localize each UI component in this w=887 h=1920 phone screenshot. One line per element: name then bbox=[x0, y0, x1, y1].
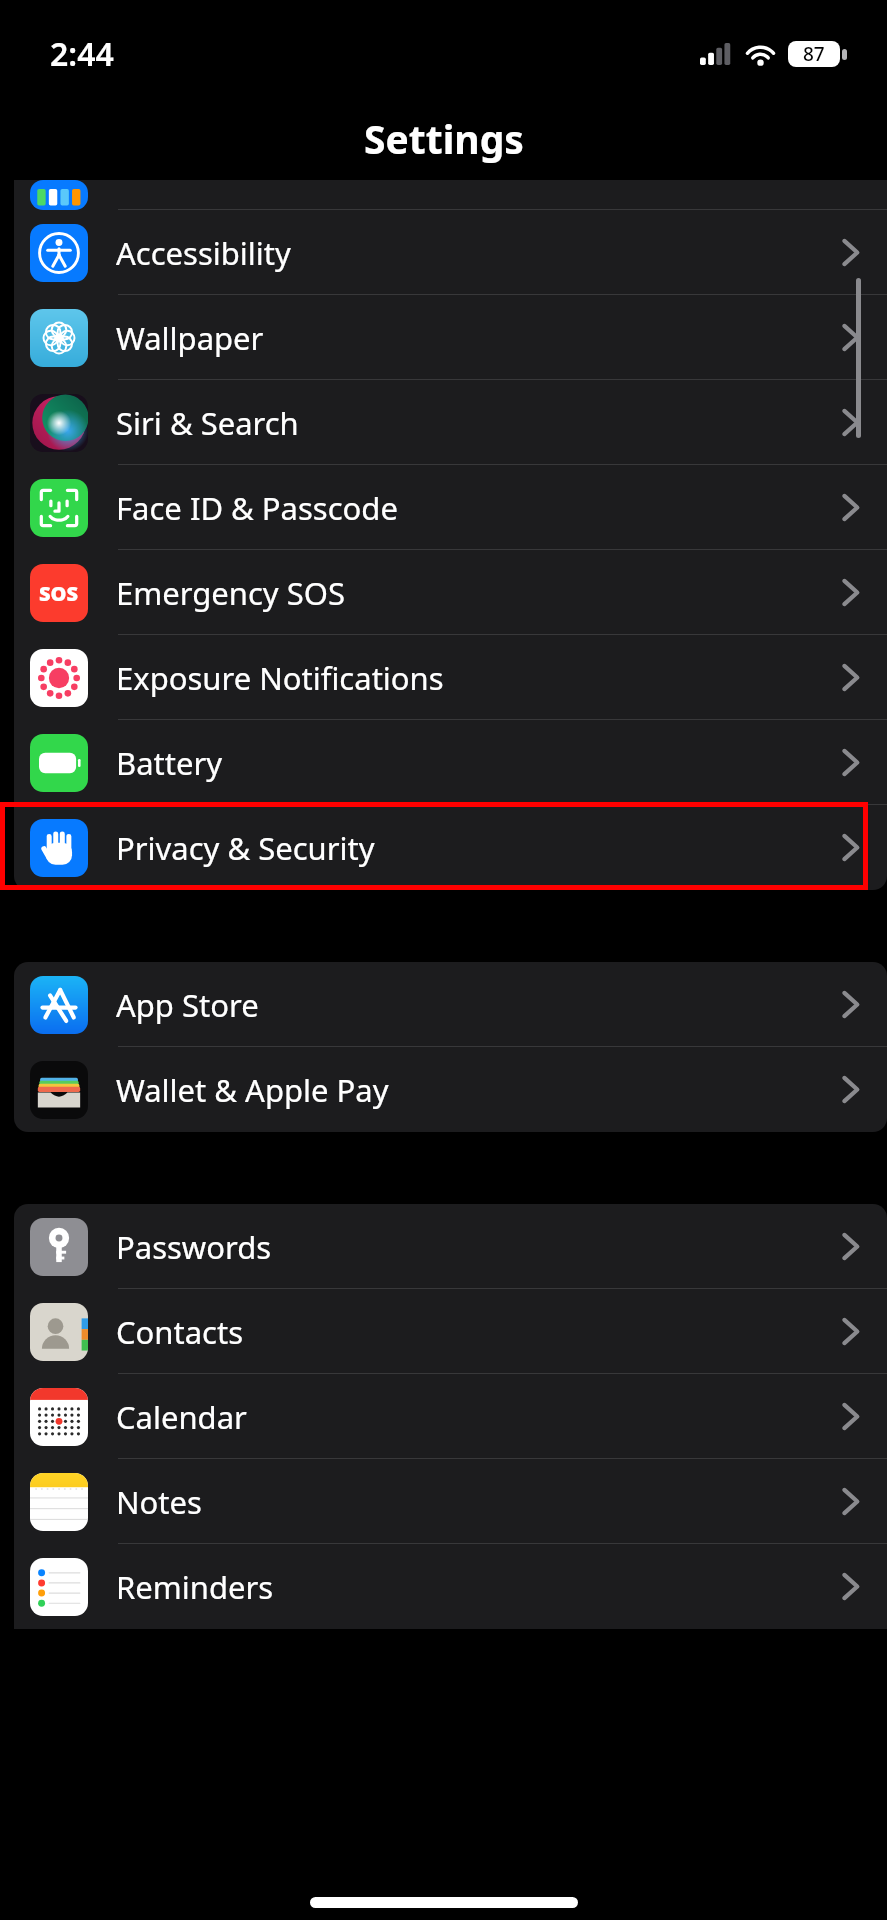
button[interactable]: Wallpaper bbox=[14, 295, 887, 380]
staticText: Contacts bbox=[116, 1311, 244, 1353]
button[interactable]: Reminders bbox=[14, 1544, 887, 1629]
staticText: Face ID & Passcode bbox=[116, 487, 398, 529]
button[interactable]: Accessibility bbox=[14, 210, 887, 295]
staticText: Emergency SOS bbox=[116, 572, 345, 614]
staticText: Accessibility bbox=[116, 232, 291, 274]
button[interactable]: Siri & Search bbox=[14, 380, 887, 465]
staticText: Notes bbox=[116, 1481, 202, 1523]
staticText: Passwords bbox=[116, 1226, 272, 1268]
staticText: Privacy & Security bbox=[116, 827, 375, 869]
button[interactable]: Face ID & Passcode bbox=[14, 465, 887, 550]
button[interactable]: App Store bbox=[14, 962, 887, 1047]
button[interactable]: Contacts bbox=[14, 1289, 887, 1374]
staticText: 87 bbox=[803, 41, 825, 67]
staticText: Exposure Notifications bbox=[116, 657, 444, 699]
staticText: Settings bbox=[364, 112, 524, 165]
button[interactable]: Notes bbox=[14, 1459, 887, 1544]
button[interactable]: Battery bbox=[14, 720, 887, 805]
button[interactable]: Wallet & Apple Pay bbox=[14, 1047, 887, 1132]
staticText: Siri & Search bbox=[116, 402, 299, 444]
button[interactable]: Passwords bbox=[14, 1204, 887, 1289]
staticText: Calendar bbox=[116, 1396, 247, 1438]
button[interactable]: Privacy & Security bbox=[14, 805, 887, 890]
staticText: Wallet & Apple Pay bbox=[116, 1069, 389, 1111]
staticText: Wallpaper bbox=[116, 317, 264, 359]
staticText: 2:44 bbox=[50, 32, 114, 76]
button[interactable]: Calendar bbox=[14, 1374, 887, 1459]
button[interactable]: Exposure Notifications bbox=[14, 635, 887, 720]
staticText: Reminders bbox=[116, 1566, 274, 1608]
staticText: App Store bbox=[116, 984, 259, 1026]
button[interactable]: SOS bbox=[14, 550, 887, 635]
staticText: Battery bbox=[116, 742, 223, 784]
staticText: SOS bbox=[39, 580, 79, 607]
